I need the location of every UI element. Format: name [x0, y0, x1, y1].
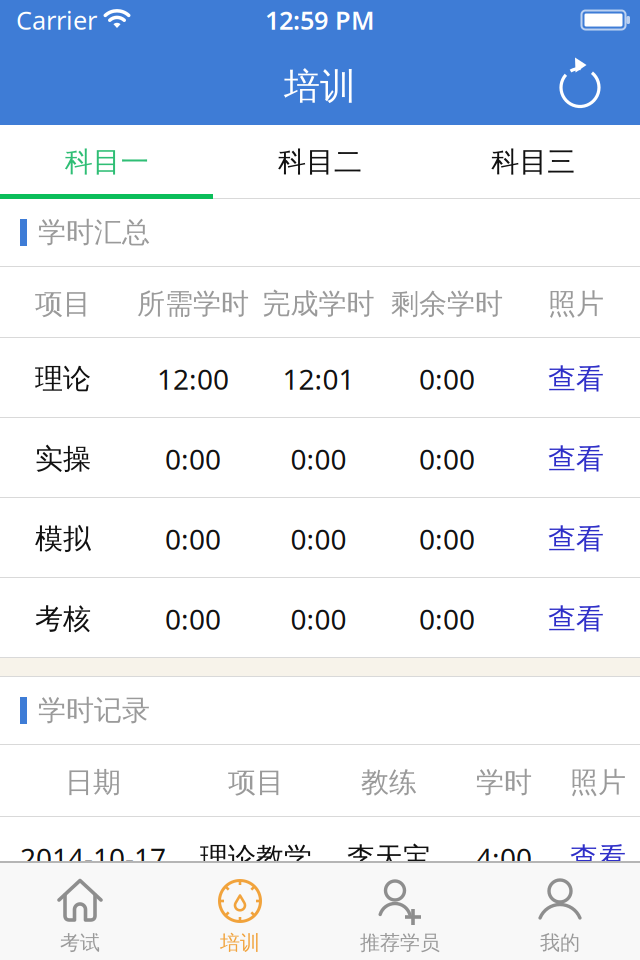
staticText: 日期 [65, 765, 121, 800]
staticText: 学时汇总 [38, 215, 150, 250]
button[interactable]: 查看 [512, 339, 640, 418]
staticText: 教练 [361, 765, 417, 800]
staticText: 0:00 [290, 440, 346, 478]
staticText: 科目一 [65, 145, 149, 179]
staticText: 0:00 [165, 440, 221, 478]
staticText: 完成学时 [262, 287, 374, 321]
staticText: 0:00 [419, 600, 475, 638]
staticText: 12:01 [282, 360, 354, 398]
staticText: 实操 [35, 442, 91, 476]
button[interactable]: 查看 [512, 579, 640, 658]
staticText: 0:00 [419, 360, 475, 398]
staticText: 照片 [548, 287, 604, 321]
staticText: 项目 [228, 765, 284, 800]
button[interactable]: 推荐学员 [320, 863, 480, 960]
staticText: 培训 [284, 64, 356, 109]
staticText: 0:00 [290, 600, 346, 638]
staticText: 查看 [548, 362, 604, 396]
button[interactable]: 科目一 [0, 125, 213, 199]
staticText: 12:59 PM [265, 3, 375, 37]
staticText: Carrier [16, 3, 97, 37]
staticText: 学时 [476, 765, 532, 800]
staticText: 所需学时 [137, 287, 249, 321]
staticText: 理论 [35, 362, 91, 396]
staticText: 查看 [548, 442, 604, 476]
staticText: 0:00 [419, 440, 475, 478]
staticText: 科目二 [278, 145, 362, 179]
staticText: 0:00 [419, 520, 475, 558]
staticText: 理论教学 [200, 841, 312, 875]
staticText: 考试 [60, 930, 100, 955]
button[interactable]: 科目三 [427, 125, 640, 199]
staticText: 我的 [540, 930, 580, 955]
staticText: 考核 [35, 602, 91, 636]
button[interactable]: 查看 [512, 419, 640, 498]
button[interactable]: 科目二 [213, 125, 427, 199]
staticText: 0:00 [165, 600, 221, 638]
staticText: 0:00 [165, 520, 221, 558]
staticText: 学时记录 [38, 693, 150, 728]
staticText: 查看 [548, 522, 604, 556]
button[interactable]: 查看 [556, 818, 640, 897]
staticText: 模拟 [35, 522, 91, 556]
staticText: 项目 [35, 287, 91, 321]
button[interactable]: 我的 [480, 863, 640, 960]
button[interactable]: 查看 [512, 499, 640, 578]
button[interactable]: 培训 [160, 863, 320, 960]
staticText: 照片 [570, 765, 626, 800]
staticText: 剩余学时 [391, 287, 503, 321]
staticText: 培训 [220, 930, 260, 955]
staticText: 推荐学员 [360, 930, 440, 955]
staticText: 李天宝 [347, 841, 431, 875]
staticText: 12:00 [157, 360, 229, 398]
button[interactable]: 考试 [0, 863, 160, 960]
staticText: 4:00 [476, 839, 532, 877]
staticText: 查看 [548, 602, 604, 636]
staticText: 2014-10-17 [20, 839, 166, 877]
button[interactable]: Refresh [558, 58, 606, 106]
staticText: 0:00 [290, 520, 346, 558]
staticText: 科目三 [491, 145, 575, 179]
staticText: 查看 [570, 841, 626, 875]
